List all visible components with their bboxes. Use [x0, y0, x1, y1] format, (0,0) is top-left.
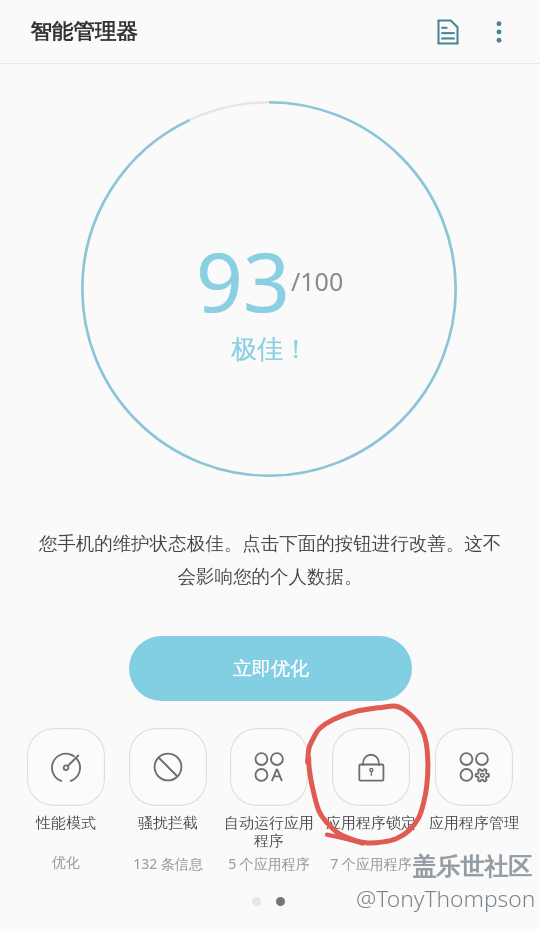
staticText: 应用程序锁定 [320, 814, 422, 833]
staticText: 性能模式 [15, 814, 117, 833]
staticText: 骚扰拦截 [117, 814, 219, 833]
staticText: 极佳！ [231, 333, 309, 366]
button[interactable]: 立即优化 [129, 636, 412, 701]
button[interactable]: 骚扰拦截 [117, 728, 219, 888]
staticText: 您手机的维护状态极佳。点击下面的按钮进行改善。这不会影响您的个人数据。 [30, 532, 510, 589]
staticText: 93 [196, 224, 290, 336]
staticText: 应用程序管理 [423, 814, 525, 833]
staticText: 5 个应用程序 [218, 854, 320, 873]
staticText: 132 条信息 [117, 854, 219, 873]
staticText: 优化 [15, 854, 117, 872]
button[interactable]: Report [424, 8, 472, 56]
staticText: 7 个应用程序 [320, 854, 422, 873]
button[interactable]: 应用程序锁定 [320, 728, 422, 888]
staticText: 立即优化 [233, 657, 309, 681]
staticText: /100 [291, 264, 344, 298]
staticText: 智能管理器 [30, 18, 138, 45]
staticText: 自动运行应用程序 [218, 814, 320, 851]
staticText: 盖乐世社区 [412, 852, 532, 882]
button[interactable]: 性能模式 [15, 728, 117, 888]
button[interactable]: More options [475, 8, 523, 56]
staticText: @TonyThompson [356, 883, 536, 914]
button[interactable]: 应用程序管理 [423, 728, 525, 888]
button[interactable]: 自动运行应用程序 [218, 728, 320, 888]
